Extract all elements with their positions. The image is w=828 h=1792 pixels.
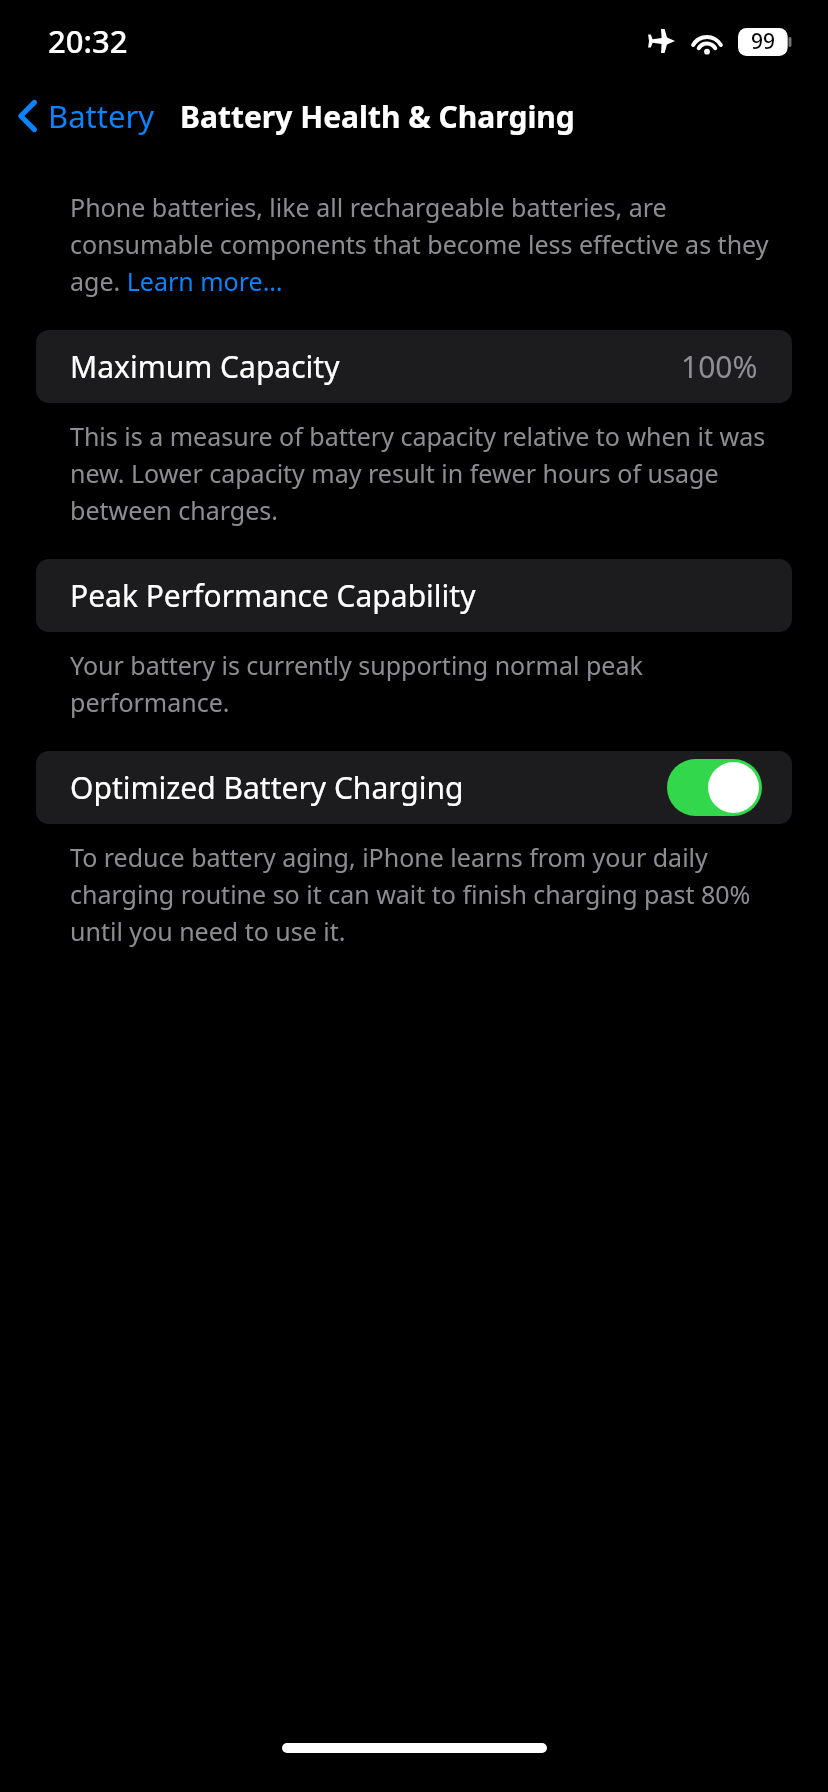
staticText: To reduce battery aging, iPhone learns f… <box>70 840 788 948</box>
other: Wi-Fi <box>690 28 724 54</box>
other: Airplane mode <box>646 26 676 56</box>
staticText: 20:32 <box>48 20 128 62</box>
button[interactable]: Battery <box>0 89 163 143</box>
staticText: Peak Performance Capability <box>70 575 476 616</box>
staticText: Optimized Battery Charging <box>70 767 464 808</box>
button[interactable]: Peak Performance Capability <box>36 559 792 632</box>
staticText: Your battery is currently supporting nor… <box>70 648 788 719</box>
button[interactable]: Optimized Battery Charging toggle <box>667 759 762 816</box>
staticText: 99 <box>751 27 776 56</box>
staticText: This is a measure of battery capacity re… <box>70 419 788 527</box>
staticText: Battery <box>48 95 155 137</box>
button[interactable]: Optimized Battery Charging <box>36 751 792 824</box>
staticText: Battery Health & Charging <box>180 96 575 137</box>
staticText: 100% <box>681 346 758 387</box>
staticText: Phone batteries, like all rechargeable b… <box>70 190 792 298</box>
other: Battery 99 percent <box>738 27 792 56</box>
button[interactable]: Maximum Capacity <box>36 330 792 403</box>
staticText: Maximum Capacity <box>70 346 340 387</box>
